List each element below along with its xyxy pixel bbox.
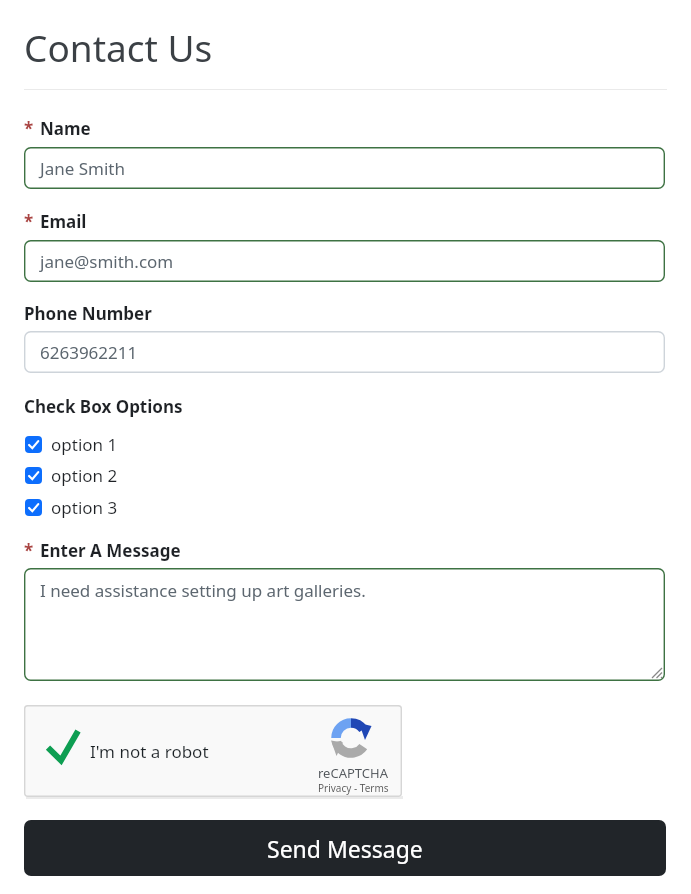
staticText: * <box>24 210 34 233</box>
staticText: Email <box>40 210 87 233</box>
staticText: Enter A Message <box>40 539 181 562</box>
staticText: I'm not a robot <box>90 740 209 763</box>
staticText: 6263962211 <box>40 341 138 364</box>
staticText: Name <box>40 117 91 140</box>
staticText: Privacy - Terms <box>318 781 389 795</box>
button[interactable]: Send Message <box>24 820 666 876</box>
staticText: reCAPTCHA <box>318 764 388 782</box>
staticText: jane@smith.com <box>40 250 174 273</box>
staticText: * <box>24 539 34 562</box>
button[interactable]: I need assistance setting up art galleri… <box>24 568 665 681</box>
staticText: option 2 <box>51 464 118 487</box>
staticText: Phone Number <box>24 302 152 325</box>
button[interactable]: I'm not a robot <box>24 705 402 797</box>
staticText: * <box>24 117 34 140</box>
staticText: Send Message <box>267 833 423 864</box>
staticText: Jane Smith <box>40 157 125 180</box>
button[interactable]: 6263962211 <box>24 331 665 373</box>
button[interactable]: option 2 <box>25 464 118 487</box>
staticText: Contact Us <box>24 22 213 72</box>
staticText: Check Box Options <box>24 395 183 418</box>
staticText: option 3 <box>51 496 118 519</box>
staticText: I need assistance setting up art galleri… <box>40 579 366 602</box>
button[interactable]: option 1 <box>25 433 118 456</box>
button[interactable]: option 3 <box>25 496 118 519</box>
staticText: option 1 <box>51 433 118 456</box>
button[interactable]: jane@smith.com <box>24 240 665 282</box>
button[interactable]: Jane Smith <box>24 147 665 189</box>
